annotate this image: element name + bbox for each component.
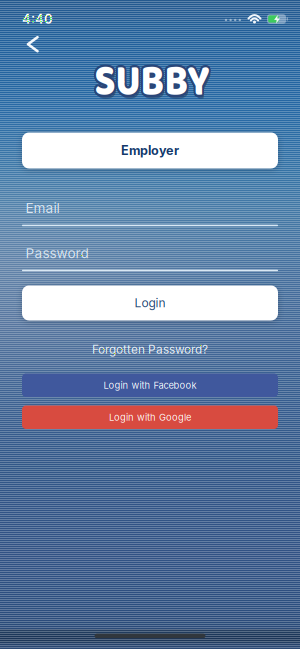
staticText: Login with Google xyxy=(109,412,191,423)
staticText: SUBBY xyxy=(96,50,211,111)
staticText: SUBBY xyxy=(94,54,209,115)
staticText: SUBBY xyxy=(94,50,209,111)
button[interactable]: Employer xyxy=(22,132,278,168)
staticText: Password xyxy=(25,245,88,262)
button[interactable]: Forgotten Password? xyxy=(92,341,208,357)
button[interactable]: Login xyxy=(22,285,278,320)
staticText: SUBBY xyxy=(96,55,211,116)
staticText: 4:40 xyxy=(22,11,53,27)
staticText: SUBBY xyxy=(96,53,211,114)
staticText: SUBBY xyxy=(92,52,207,113)
button[interactable]: Login with Facebook xyxy=(22,373,278,397)
button[interactable]: Email xyxy=(0,199,300,226)
button[interactable]: Password xyxy=(0,244,300,271)
button[interactable] xyxy=(0,0,37,51)
staticText: SUBBY xyxy=(97,52,212,113)
staticText: Forgotten Password? xyxy=(92,342,208,357)
staticText: Employer xyxy=(121,143,179,158)
staticText: SUBBY xyxy=(93,50,208,111)
staticText: SUBBY xyxy=(93,53,208,114)
staticText: Login with Facebook xyxy=(103,380,196,391)
button[interactable]: Login with Google xyxy=(22,405,278,429)
staticText: Login xyxy=(134,296,165,310)
staticText: Email xyxy=(25,200,59,216)
staticText: SUBBY xyxy=(94,52,209,113)
